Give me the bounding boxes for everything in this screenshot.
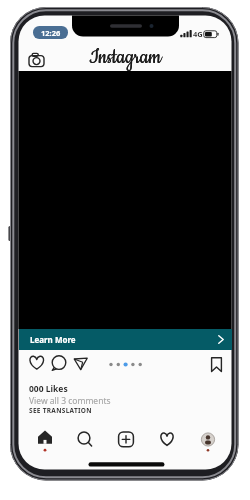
button[interactable]: Learn More (19, 329, 232, 350)
button[interactable] (50, 353, 68, 371)
button[interactable]: SEE TRANSLATION (29, 406, 92, 415)
button[interactable] (26, 49, 47, 70)
button[interactable] (27, 353, 47, 371)
button[interactable]: View all 3 comments (29, 395, 111, 407)
staticText: 4G (193, 29, 203, 39)
button[interactable] (206, 355, 224, 373)
staticText: Instagram (89, 45, 162, 71)
staticText: Instagram (89, 45, 162, 71)
button[interactable] (69, 427, 101, 454)
button[interactable] (110, 427, 142, 454)
staticText: 12:26 (41, 28, 61, 38)
staticText: Instagram (89, 45, 162, 71)
button[interactable] (192, 427, 224, 454)
staticText: 000 Likes (29, 383, 68, 395)
staticText: Learn More (30, 334, 76, 345)
staticText: View all 3 comments (29, 395, 111, 407)
button[interactable] (151, 427, 183, 454)
staticText: SEE TRANSLATION (29, 406, 92, 415)
button[interactable] (72, 353, 90, 371)
button[interactable] (29, 427, 61, 454)
